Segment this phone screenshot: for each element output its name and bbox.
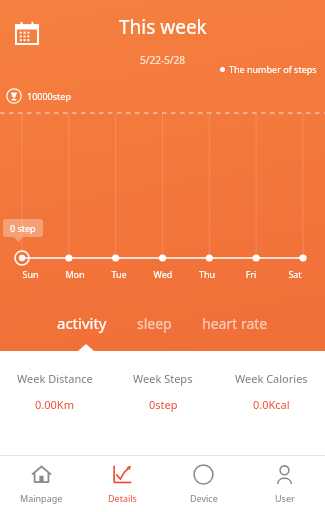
staticText: 0.0Kcal xyxy=(253,397,290,412)
staticText: activity xyxy=(57,313,107,333)
button[interactable]: User xyxy=(244,456,325,512)
staticText: Week Distance xyxy=(17,371,93,386)
staticText: The number of steps xyxy=(229,63,317,75)
staticText: heart rate xyxy=(202,314,268,333)
staticText: Week Steps xyxy=(133,371,193,386)
staticText: Avg Steps xyxy=(138,454,189,469)
button[interactable]: Details xyxy=(82,456,163,512)
button[interactable]: Mainpage xyxy=(0,456,82,512)
staticText: Mon xyxy=(53,268,97,280)
staticText: sleep xyxy=(137,314,172,333)
button[interactable]: heart rate xyxy=(198,308,272,339)
button[interactable]: Calendar xyxy=(10,16,44,50)
staticText: This week xyxy=(119,14,207,40)
staticText: 0.0Kcal xyxy=(253,480,290,495)
button[interactable]: Device xyxy=(163,456,244,512)
staticText: Tue xyxy=(97,268,141,280)
staticText: 10000step xyxy=(27,90,71,102)
staticText: Fri xyxy=(229,268,273,280)
staticText: 5/22-5/28 xyxy=(140,53,185,67)
staticText: Sat xyxy=(273,268,317,280)
staticText: 0step xyxy=(149,397,178,412)
staticText: 0.00Km xyxy=(35,397,74,412)
staticText: Device xyxy=(190,492,218,504)
staticText: Thu xyxy=(185,268,229,280)
staticText: 0.00Km xyxy=(35,480,74,495)
staticText: 0 step xyxy=(10,222,36,234)
staticText: Avg Calories xyxy=(239,454,303,469)
staticText: Week Calories xyxy=(235,371,308,386)
staticText: Wed xyxy=(141,268,185,280)
staticText: Mainpage xyxy=(20,492,63,504)
staticText: User xyxy=(275,492,295,504)
staticText: Details xyxy=(108,492,137,504)
staticText: Sun xyxy=(8,268,53,280)
button[interactable]: activity xyxy=(53,307,111,339)
staticText: Avg Distance xyxy=(21,454,88,469)
button[interactable]: sleep xyxy=(133,308,176,339)
